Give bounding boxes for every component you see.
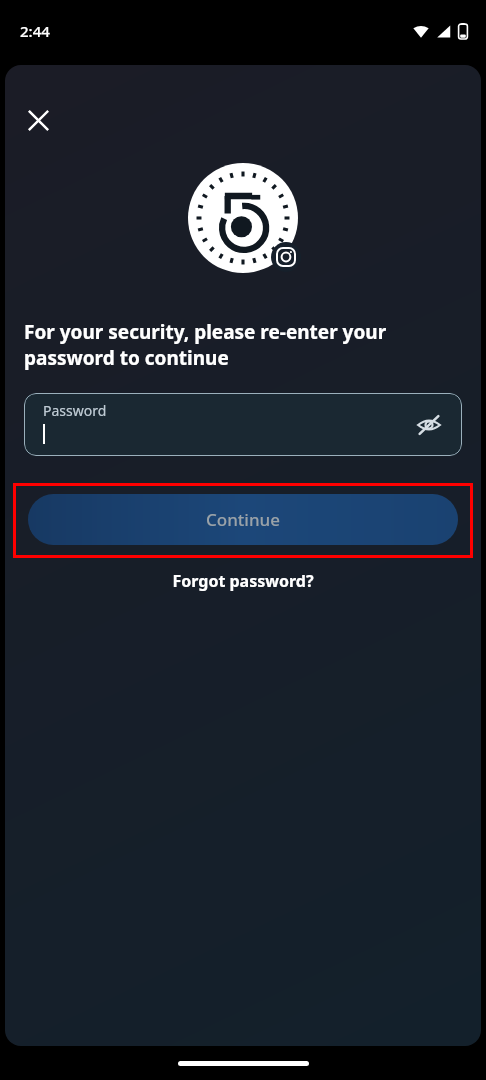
staticText: For your security, please re-enter your …: [24, 319, 454, 371]
button[interactable]: Close: [16, 98, 60, 142]
staticText: Continue: [206, 508, 281, 531]
button[interactable]: Show password: [408, 404, 450, 446]
button[interactable]: Forgot password?: [5, 563, 481, 599]
staticText: Password: [43, 401, 107, 420]
button[interactable]: Instagram: [271, 242, 301, 272]
button[interactable]: Continue: [28, 494, 458, 545]
button[interactable]: Password: [24, 393, 462, 456]
staticText: 2:44: [20, 21, 50, 41]
staticText: Forgot password?: [172, 570, 314, 592]
